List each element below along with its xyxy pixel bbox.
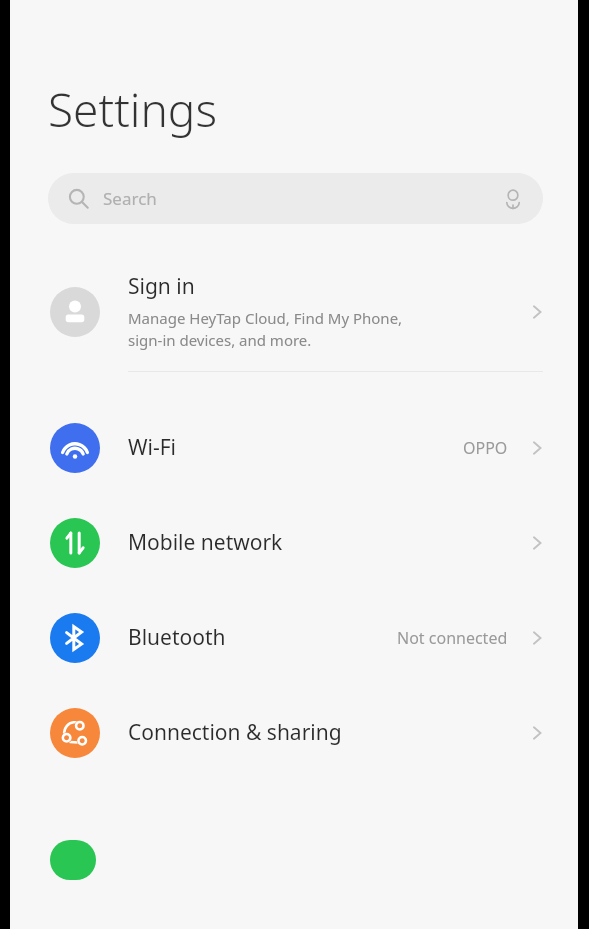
staticText: Settings — [48, 78, 217, 141]
staticText: Search — [103, 187, 157, 210]
button[interactable]: Bluetooth — [10, 590, 578, 685]
button[interactable]: Sign in — [10, 266, 578, 357]
button[interactable]: Wi-Fi — [10, 400, 578, 495]
staticText: Not connected — [397, 627, 508, 649]
staticText: Connection & sharing — [128, 718, 342, 747]
other: Voice search — [503, 189, 523, 209]
button[interactable]: Search — [48, 173, 543, 224]
staticText: OPPO — [463, 437, 508, 459]
staticText: Mobile network — [128, 528, 283, 557]
button[interactable]: Connection & sharing — [10, 685, 578, 780]
staticText: Bluetooth — [128, 623, 226, 652]
staticText: Wi-Fi — [128, 433, 177, 462]
button[interactable]: Mobile network — [10, 495, 578, 590]
staticText: Manage HeyTap Cloud, Find My Phone, sign… — [128, 308, 403, 351]
staticText: Sign in — [128, 272, 195, 301]
